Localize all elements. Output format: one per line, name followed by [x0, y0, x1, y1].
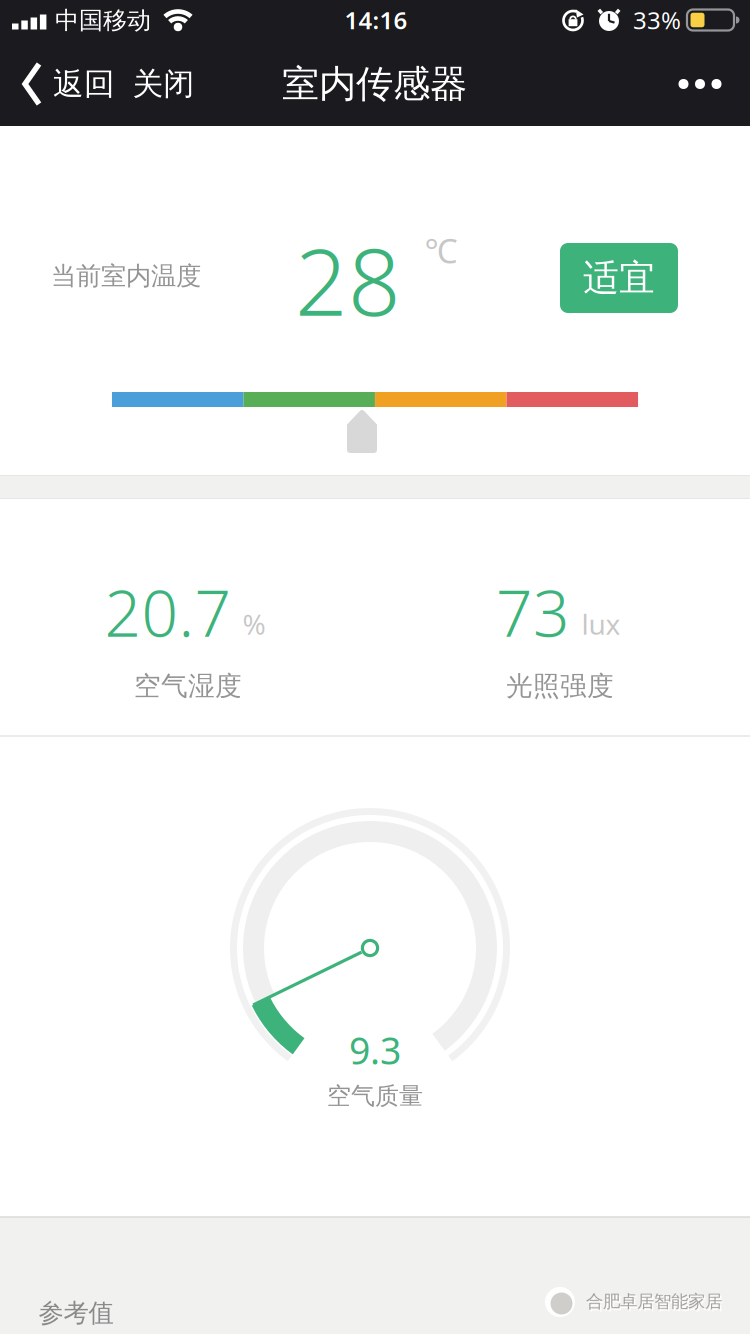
- staticText: 关闭: [132, 65, 194, 103]
- staticText: 20.7: [104, 569, 231, 654]
- staticText: 28: [295, 219, 401, 341]
- staticText: 73: [496, 569, 570, 654]
- staticText: 室内传感器: [282, 61, 467, 107]
- button[interactable]: 更多: [665, 49, 735, 119]
- staticText: 适宜: [583, 256, 655, 300]
- staticText: 空气湿度: [134, 670, 242, 702]
- staticText: 33%: [633, 4, 681, 36]
- button[interactable]: 返回: [22, 49, 172, 119]
- staticText: 返回: [53, 65, 115, 103]
- staticText: 中国移动: [55, 6, 151, 35]
- staticText: %: [242, 605, 265, 643]
- staticText: lux: [581, 605, 620, 643]
- staticText: 参考值: [38, 1297, 113, 1328]
- staticText: 当前室内温度: [51, 260, 201, 291]
- staticText: 14:16: [344, 4, 407, 36]
- staticText: 合肥卓居智能家居: [586, 1291, 722, 1312]
- button[interactable]: 关闭: [115, 49, 211, 119]
- button[interactable]: 适宜: [560, 243, 678, 313]
- staticText: 空气质量: [327, 1081, 423, 1111]
- staticText: 光照强度: [506, 670, 614, 702]
- staticText: 9.3: [349, 1025, 401, 1075]
- staticText: ℃: [424, 228, 457, 272]
- staticText: 合肥卓居智能家居: [587, 1293, 723, 1314]
